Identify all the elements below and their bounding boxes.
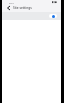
button[interactable]: Back	[2, 4, 61, 12]
staticText: Site settings	[13, 6, 32, 10]
button[interactable]: Back	[7, 6, 11, 10]
staticText: ▮▮●	[52, 1, 57, 4]
staticText: 9:41	[9, 1, 14, 4]
